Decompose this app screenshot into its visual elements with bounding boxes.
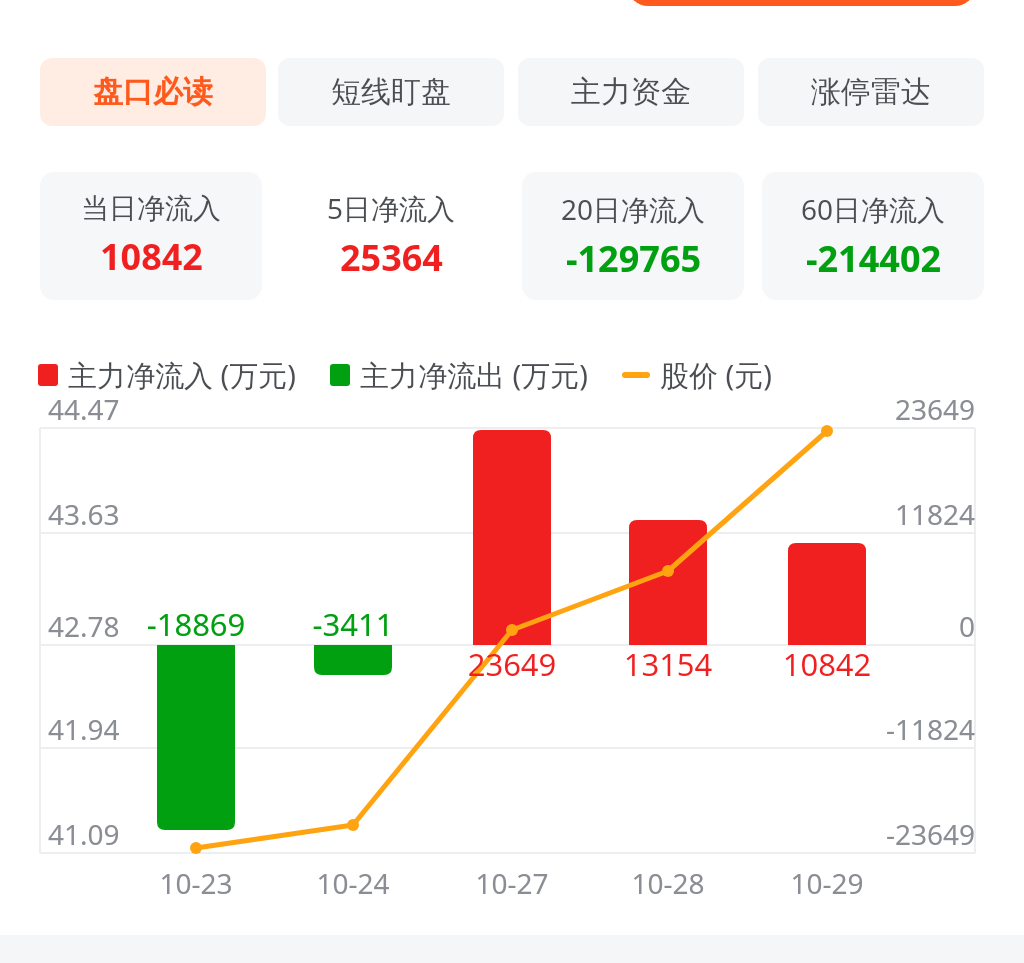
staticText: -129765 [566,234,702,283]
button[interactable]: 短线盯盘 [278,58,504,126]
staticText: 10-24 [263,864,443,902]
staticText: -23649 [795,815,975,853]
staticText: 10-23 [106,864,286,902]
staticText: 股价 (元) [660,355,772,395]
staticText: 5日净流入 [327,189,456,227]
staticText: 41.09 [48,815,120,853]
staticText: 盘口必读 [93,73,213,111]
staticText: -18869 [106,603,286,645]
staticText: 当日净流入 [81,191,221,226]
button[interactable]: 5日净流入 [280,170,502,300]
staticText: 主力净流出 (万元) [360,355,588,395]
staticText: -3411 [263,603,443,645]
staticText: 25364 [340,233,443,282]
staticText: -214402 [806,234,942,283]
staticText: 10842 [737,643,917,685]
staticText: 10-27 [422,864,602,902]
button[interactable]: 主力资金 [518,58,744,126]
button[interactable]: 盘口必读 [40,58,266,126]
button[interactable]: 20日净流入 [522,172,744,300]
staticText: 42.78 [48,607,120,645]
staticText: 10842 [100,232,203,281]
staticText: 11824 [795,495,975,533]
staticText: 23649 [795,390,975,428]
staticText: 主力资金 [571,73,691,111]
staticText: 44.47 [48,390,120,428]
staticText: 10-29 [737,864,917,902]
staticText: 20日净流入 [561,190,706,228]
staticText: 10-28 [578,864,758,902]
button[interactable]: 当日净流入 [40,172,262,300]
staticText: 13154 [578,643,758,685]
staticText: 41.94 [48,710,120,748]
staticText: -11824 [795,710,975,748]
button[interactable]: 涨停雷达 [758,58,984,126]
staticText: 涨停雷达 [811,73,931,111]
button[interactable] [628,0,975,6]
button[interactable]: 60日净流入 [762,172,984,300]
staticText: 主力净流入 (万元) [68,355,296,395]
staticText: 23649 [422,643,602,685]
staticText: 60日净流入 [801,190,946,228]
staticText: 43.63 [48,495,120,533]
staticText: 短线盯盘 [331,73,451,111]
staticText: 0 [795,607,975,645]
